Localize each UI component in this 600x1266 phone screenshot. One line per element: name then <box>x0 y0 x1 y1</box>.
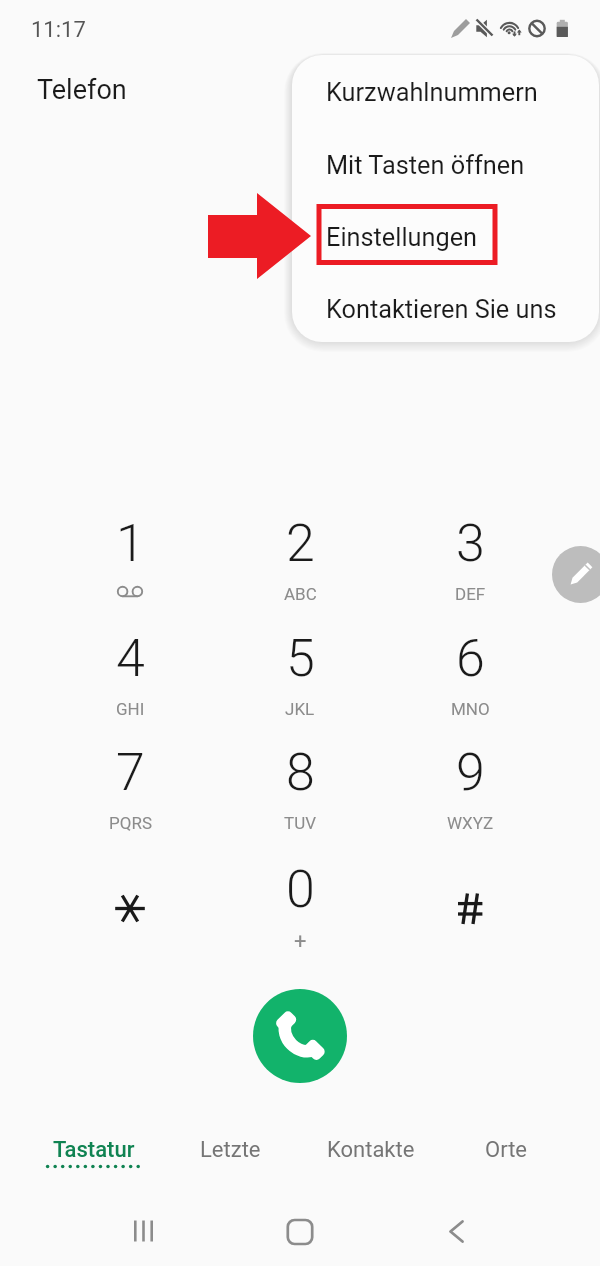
button[interactable]: Letzte <box>162 1125 299 1183</box>
staticText: TUV <box>284 813 316 833</box>
staticText: Letzte <box>200 1137 261 1163</box>
staticText: Tastatur <box>53 1137 135 1163</box>
button[interactable]: 2 <box>243 509 357 613</box>
button[interactable]: 5 <box>243 624 357 728</box>
staticText: Kurzwahlnummern <box>326 78 538 108</box>
staticText: 6 <box>456 628 485 689</box>
button[interactable]: Edit <box>552 546 600 603</box>
button[interactable]: Back <box>421 1196 492 1266</box>
button[interactable]: 7 <box>73 738 187 842</box>
button[interactable]: 4 <box>73 624 187 728</box>
staticText: 1 <box>116 513 145 574</box>
button[interactable]: Pound <box>413 837 527 941</box>
button[interactable]: 0 <box>243 855 357 959</box>
button[interactable]: Call <box>253 989 347 1083</box>
staticText: Telefon <box>37 74 127 106</box>
button[interactable]: Kontakte <box>302 1125 439 1183</box>
button[interactable]: Star <box>73 837 187 941</box>
staticText: Einstellungen <box>326 223 478 253</box>
button[interactable]: Einstellungen <box>292 203 599 273</box>
button[interactable]: 6 <box>413 624 527 728</box>
staticText: 4 <box>116 628 145 689</box>
staticText: PQRS <box>109 813 152 833</box>
staticText: WXYZ <box>447 813 494 833</box>
button[interactable]: 1 <box>73 509 187 613</box>
button[interactable]: Home <box>264 1196 336 1266</box>
button[interactable]: 8 <box>243 738 357 842</box>
staticText: Kontaktieren Sie uns <box>326 295 557 325</box>
button[interactable]: 3 <box>413 509 527 613</box>
staticText: ABC <box>284 584 317 604</box>
staticText: Kontakte <box>327 1137 415 1163</box>
staticText: GHI <box>116 699 145 719</box>
staticText: MNO <box>451 699 490 719</box>
staticText: 11:17 <box>31 17 86 43</box>
staticText: 7 <box>116 742 145 803</box>
staticText: Mit Tasten öffnen <box>326 151 525 181</box>
staticText: Orte <box>485 1137 527 1163</box>
button[interactable]: Orte <box>437 1125 574 1183</box>
staticText: 3 <box>456 513 485 574</box>
button[interactable]: Kontaktieren Sie uns <box>292 275 599 342</box>
button[interactable]: Tastatur <box>25 1125 162 1183</box>
staticText: 5 <box>286 628 315 689</box>
button[interactable]: Recent apps <box>108 1196 179 1266</box>
staticText: JKL <box>285 699 315 719</box>
staticText: + <box>294 929 307 955</box>
button[interactable]: Mit Tasten öffnen <box>292 131 599 201</box>
staticText: 2 <box>286 513 315 574</box>
staticText: 9 <box>456 742 485 803</box>
staticText: DEF <box>455 584 486 604</box>
staticText: 0 <box>286 859 315 920</box>
staticText: 8 <box>286 742 315 803</box>
button[interactable]: 9 <box>413 738 527 842</box>
button[interactable]: Kurzwahlnummern <box>292 58 599 128</box>
